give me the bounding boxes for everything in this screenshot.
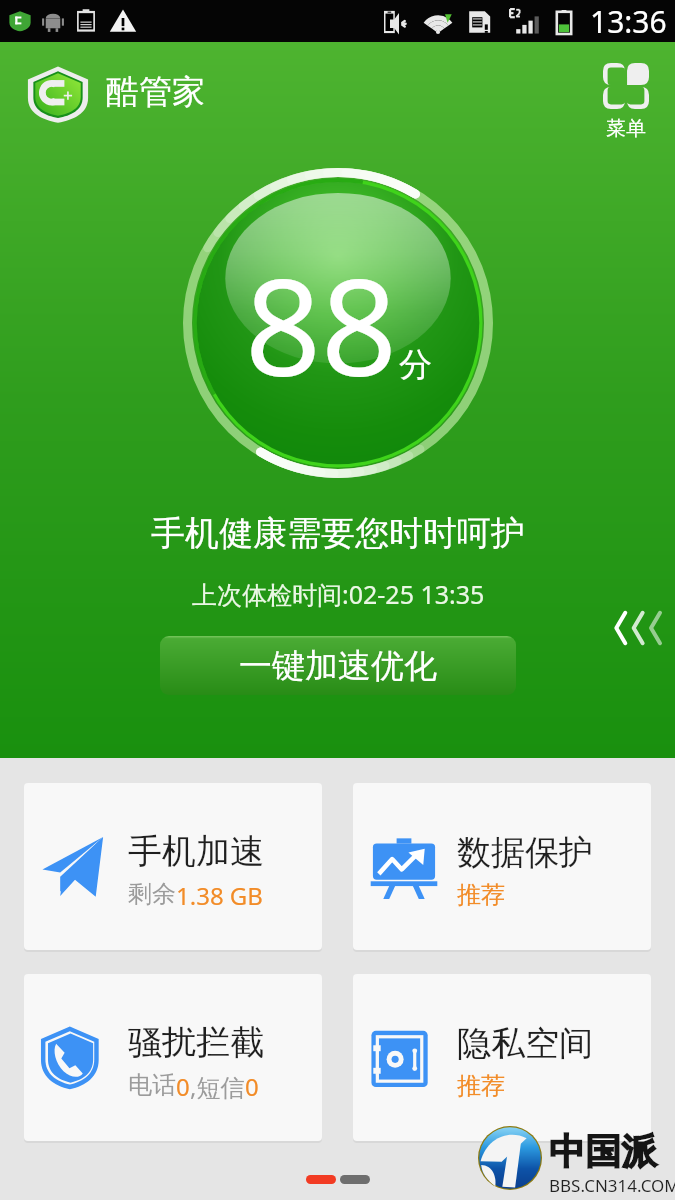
staticText: 0 — [176, 1070, 190, 1103]
staticText: 隐私空间 — [457, 1022, 593, 1065]
staticText: 酷管家 — [106, 71, 205, 113]
staticText: 1.38 GB — [176, 879, 263, 912]
button[interactable]: 手机加速 — [24, 783, 322, 950]
button[interactable]: 数据保护 — [353, 783, 651, 950]
staticText: ,短信 — [190, 1070, 245, 1103]
staticText: 一键加速优化 — [239, 645, 437, 687]
staticText: 0 — [245, 1070, 259, 1103]
staticText: 手机健康需要您时时呵护 — [151, 512, 525, 555]
staticText: 88 — [245, 234, 398, 415]
staticText: 电话 — [128, 1070, 176, 1100]
staticText: 数据保护 — [457, 831, 593, 874]
staticText: 推荐 — [457, 880, 505, 910]
staticText: 13:36 — [590, 1, 667, 42]
button[interactable]: 菜单 — [597, 49, 655, 135]
staticText: BBS.CN314.COM — [549, 1174, 675, 1197]
button[interactable]: 一键加速优化 — [160, 636, 516, 695]
staticText: 菜单 — [606, 116, 646, 141]
staticText: 手机加速 — [128, 830, 264, 873]
button[interactable]: 隐私空间 — [353, 974, 651, 1141]
staticText: 剩余 — [128, 879, 176, 909]
button[interactable]: 骚扰拦截 — [24, 974, 322, 1141]
staticText: 骚扰拦截 — [128, 1021, 264, 1064]
staticText: 推荐 — [457, 1071, 505, 1101]
staticText: 上次体检时间:02-25 13:35 — [192, 577, 485, 611]
staticText: 中国派 — [549, 1129, 657, 1174]
staticText: 分 — [399, 344, 432, 386]
